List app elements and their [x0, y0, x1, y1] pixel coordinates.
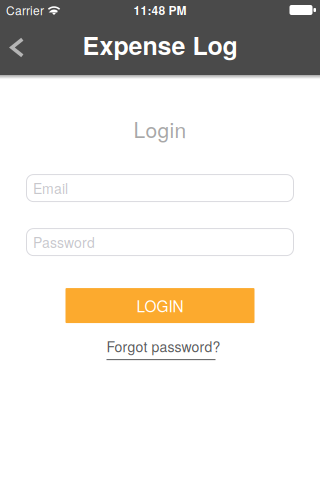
staticText: Expense Log [82, 27, 237, 63]
button[interactable]: LOGIN [65, 288, 254, 323]
staticText: Email [33, 178, 68, 198]
staticText: Forgot password? [106, 336, 220, 356]
button[interactable]: Forgot password? [106, 336, 220, 360]
staticText: LOGIN [136, 294, 183, 317]
staticText: Carrier [6, 1, 44, 19]
staticText: Login [133, 114, 186, 144]
button[interactable]: Password [26, 228, 294, 256]
button[interactable]: Email [26, 174, 294, 202]
staticText: Password [33, 232, 95, 252]
staticText: 11:48 PM [133, 1, 186, 19]
button[interactable]: Back [0, 23, 32, 71]
